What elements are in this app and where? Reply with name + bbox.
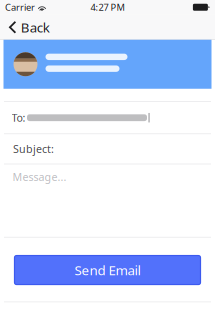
button[interactable]: Send Email [14,256,200,285]
button[interactable]: Back [0,15,60,40]
staticText: Subject: [13,142,54,156]
staticText: Carrier [5,1,35,13]
staticText: To: [11,111,25,125]
staticText: Message... [12,170,66,184]
staticText: Back [21,18,50,36]
staticText: 4:27 PM [90,1,124,13]
staticText: Send Email [74,261,140,279]
